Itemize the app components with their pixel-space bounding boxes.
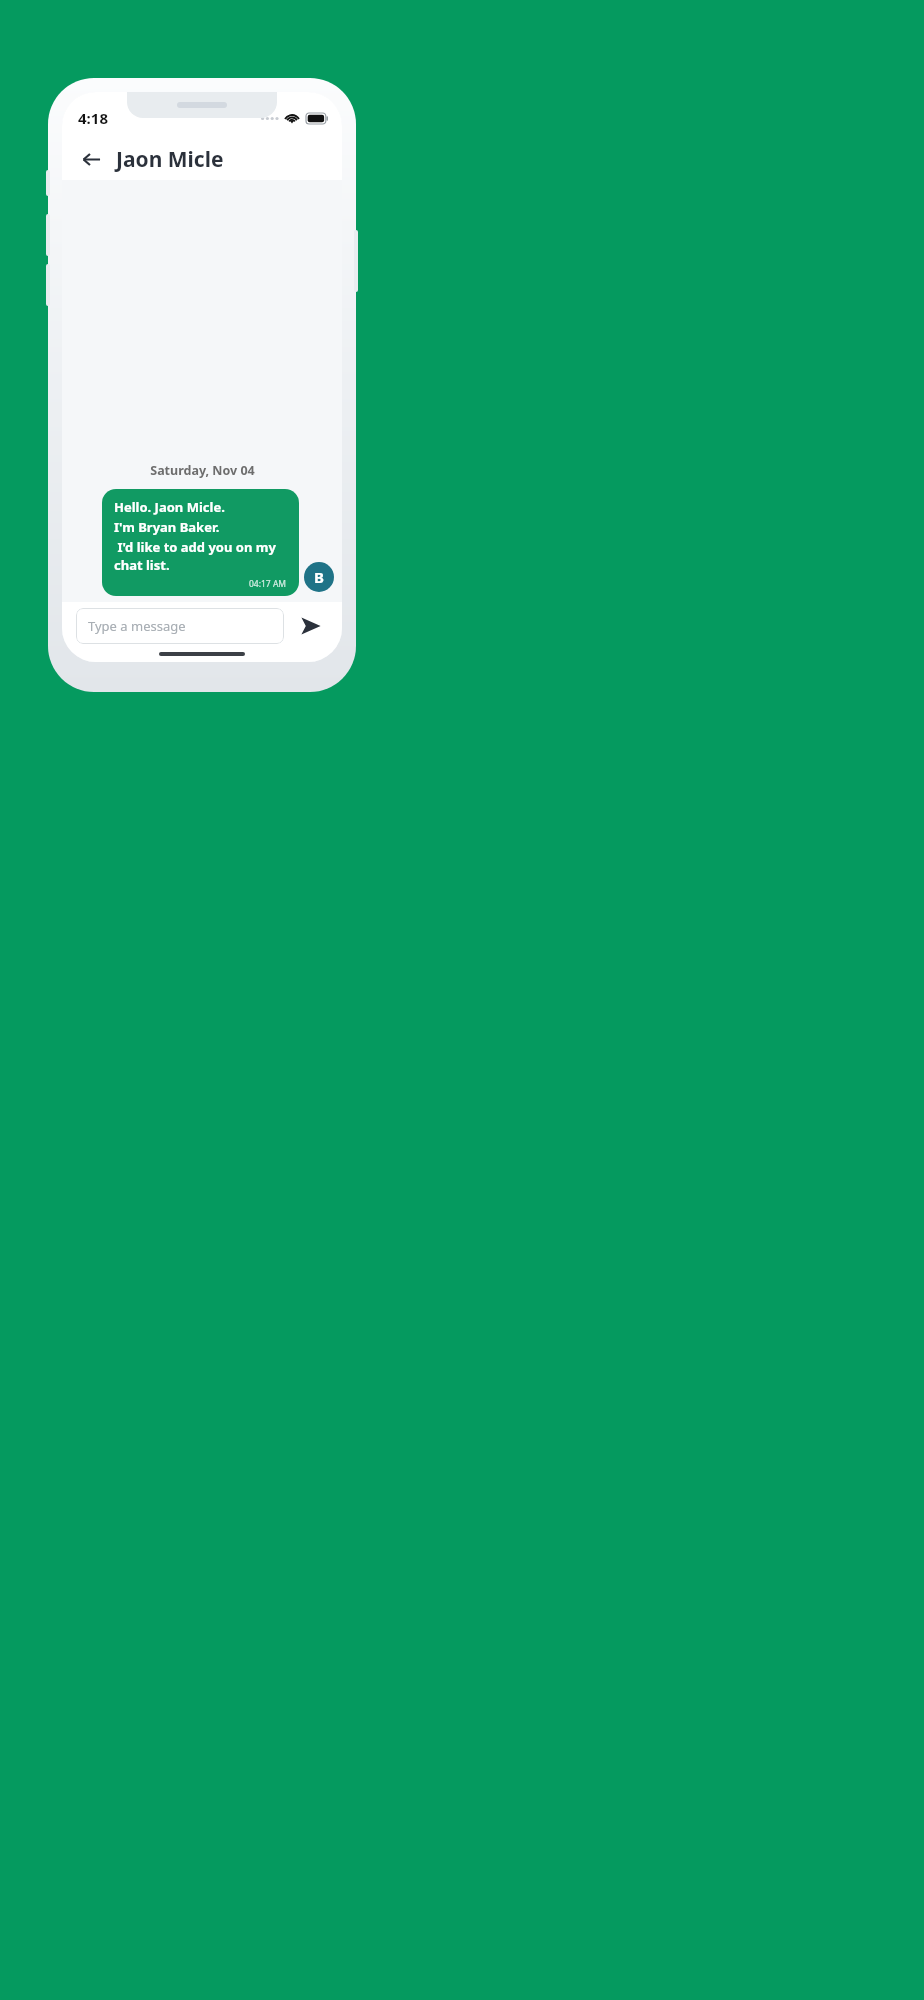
staticText: I'd like to add you on my chat list. [114,538,287,574]
button[interactable]: Hello. Jaon Micle. [102,489,299,596]
staticText: Jaon Micle [116,145,224,174]
staticText: 4:18 [78,108,108,128]
staticText: I'm Bryan Baker. [114,518,220,536]
button[interactable]: Type a message [76,608,284,644]
button[interactable]: Back [76,144,106,174]
staticText: Saturday, Nov 04 [150,462,255,479]
button[interactable]: Bryan Baker avatar [304,562,334,592]
staticText: 04:17 AM [249,578,287,590]
button[interactable]: Send [294,609,328,643]
staticText: Hello. Jaon Micle. [114,498,225,516]
staticText: B [314,567,324,587]
staticText: Type a message [88,617,186,635]
